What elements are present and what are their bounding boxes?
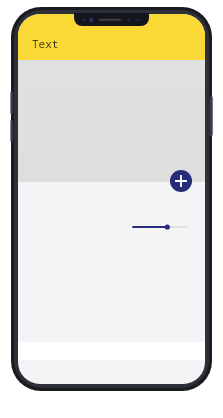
button[interactable]: Slider: [130, 219, 190, 235]
button[interactable]: Text: [32, 36, 59, 51]
button[interactable]: Add: [170, 170, 192, 192]
staticText: Text: [32, 36, 59, 51]
